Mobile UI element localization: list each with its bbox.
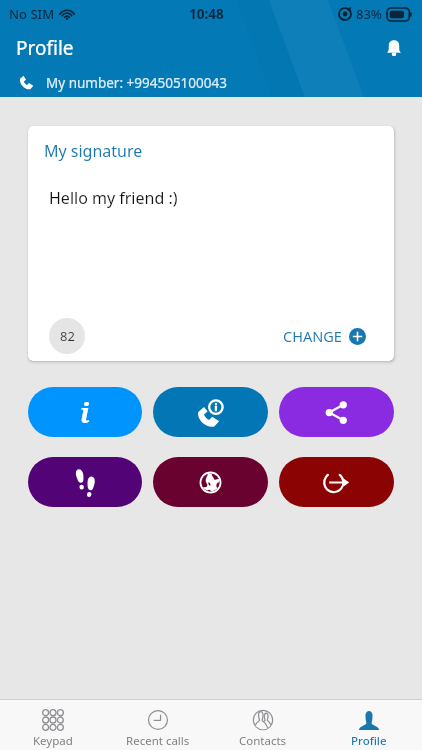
button[interactable]: CHANGE	[283, 326, 366, 346]
button[interactable]: Globe	[153, 457, 268, 507]
staticText: Profile	[351, 733, 387, 749]
staticText: Hello my friend :)	[49, 187, 178, 209]
staticText: 82	[60, 327, 75, 345]
button[interactable]: Call info	[153, 387, 268, 437]
staticText: Recent calls	[126, 733, 190, 749]
staticText: Keypad	[33, 733, 73, 749]
staticText: My signature	[44, 140, 143, 162]
staticText: No SIM	[9, 5, 55, 23]
button[interactable]: Information	[28, 387, 142, 437]
button[interactable]: Share	[279, 387, 394, 437]
staticText: CHANGE	[283, 326, 342, 346]
button[interactable]: Log out	[279, 457, 394, 507]
staticText: Contacts	[239, 733, 287, 749]
button[interactable]: Keypad	[0, 700, 105, 750]
button[interactable]: Recent calls	[105, 700, 210, 750]
button[interactable]: Notifications	[378, 32, 410, 64]
button[interactable]: Contacts	[210, 700, 316, 750]
staticText: i	[80, 394, 90, 431]
staticText: My number: +994505100043	[46, 74, 227, 92]
staticText: 10:48	[189, 5, 224, 23]
button[interactable]: Steps	[28, 457, 142, 507]
button[interactable]: Profile	[316, 700, 422, 750]
staticText: 83%	[356, 5, 382, 23]
staticText: Profile	[16, 35, 74, 61]
